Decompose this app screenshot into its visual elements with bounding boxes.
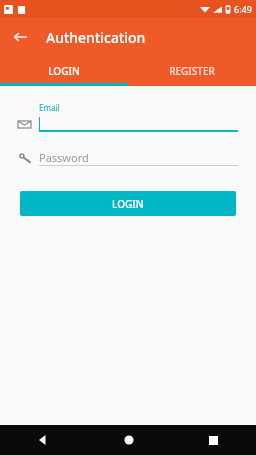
- staticText: 6:49: [234, 3, 252, 15]
- staticText: Email: [39, 102, 60, 113]
- button[interactable]: LOGIN: [20, 191, 236, 216]
- staticText: Password: [39, 150, 89, 165]
- staticText: REGISTER: [169, 64, 215, 78]
- button[interactable]: Back: [8, 25, 32, 49]
- button[interactable]: REGISTER: [128, 56, 256, 86]
- button[interactable]: Back: [0, 425, 86, 455]
- staticText: LOGIN: [112, 197, 144, 211]
- staticText: Authentication: [46, 28, 146, 47]
- button[interactable]: Home: [86, 425, 171, 455]
- button[interactable]: LOGIN: [0, 56, 128, 86]
- staticText: LOGIN: [48, 64, 80, 78]
- button[interactable]: Recent apps: [171, 425, 256, 455]
